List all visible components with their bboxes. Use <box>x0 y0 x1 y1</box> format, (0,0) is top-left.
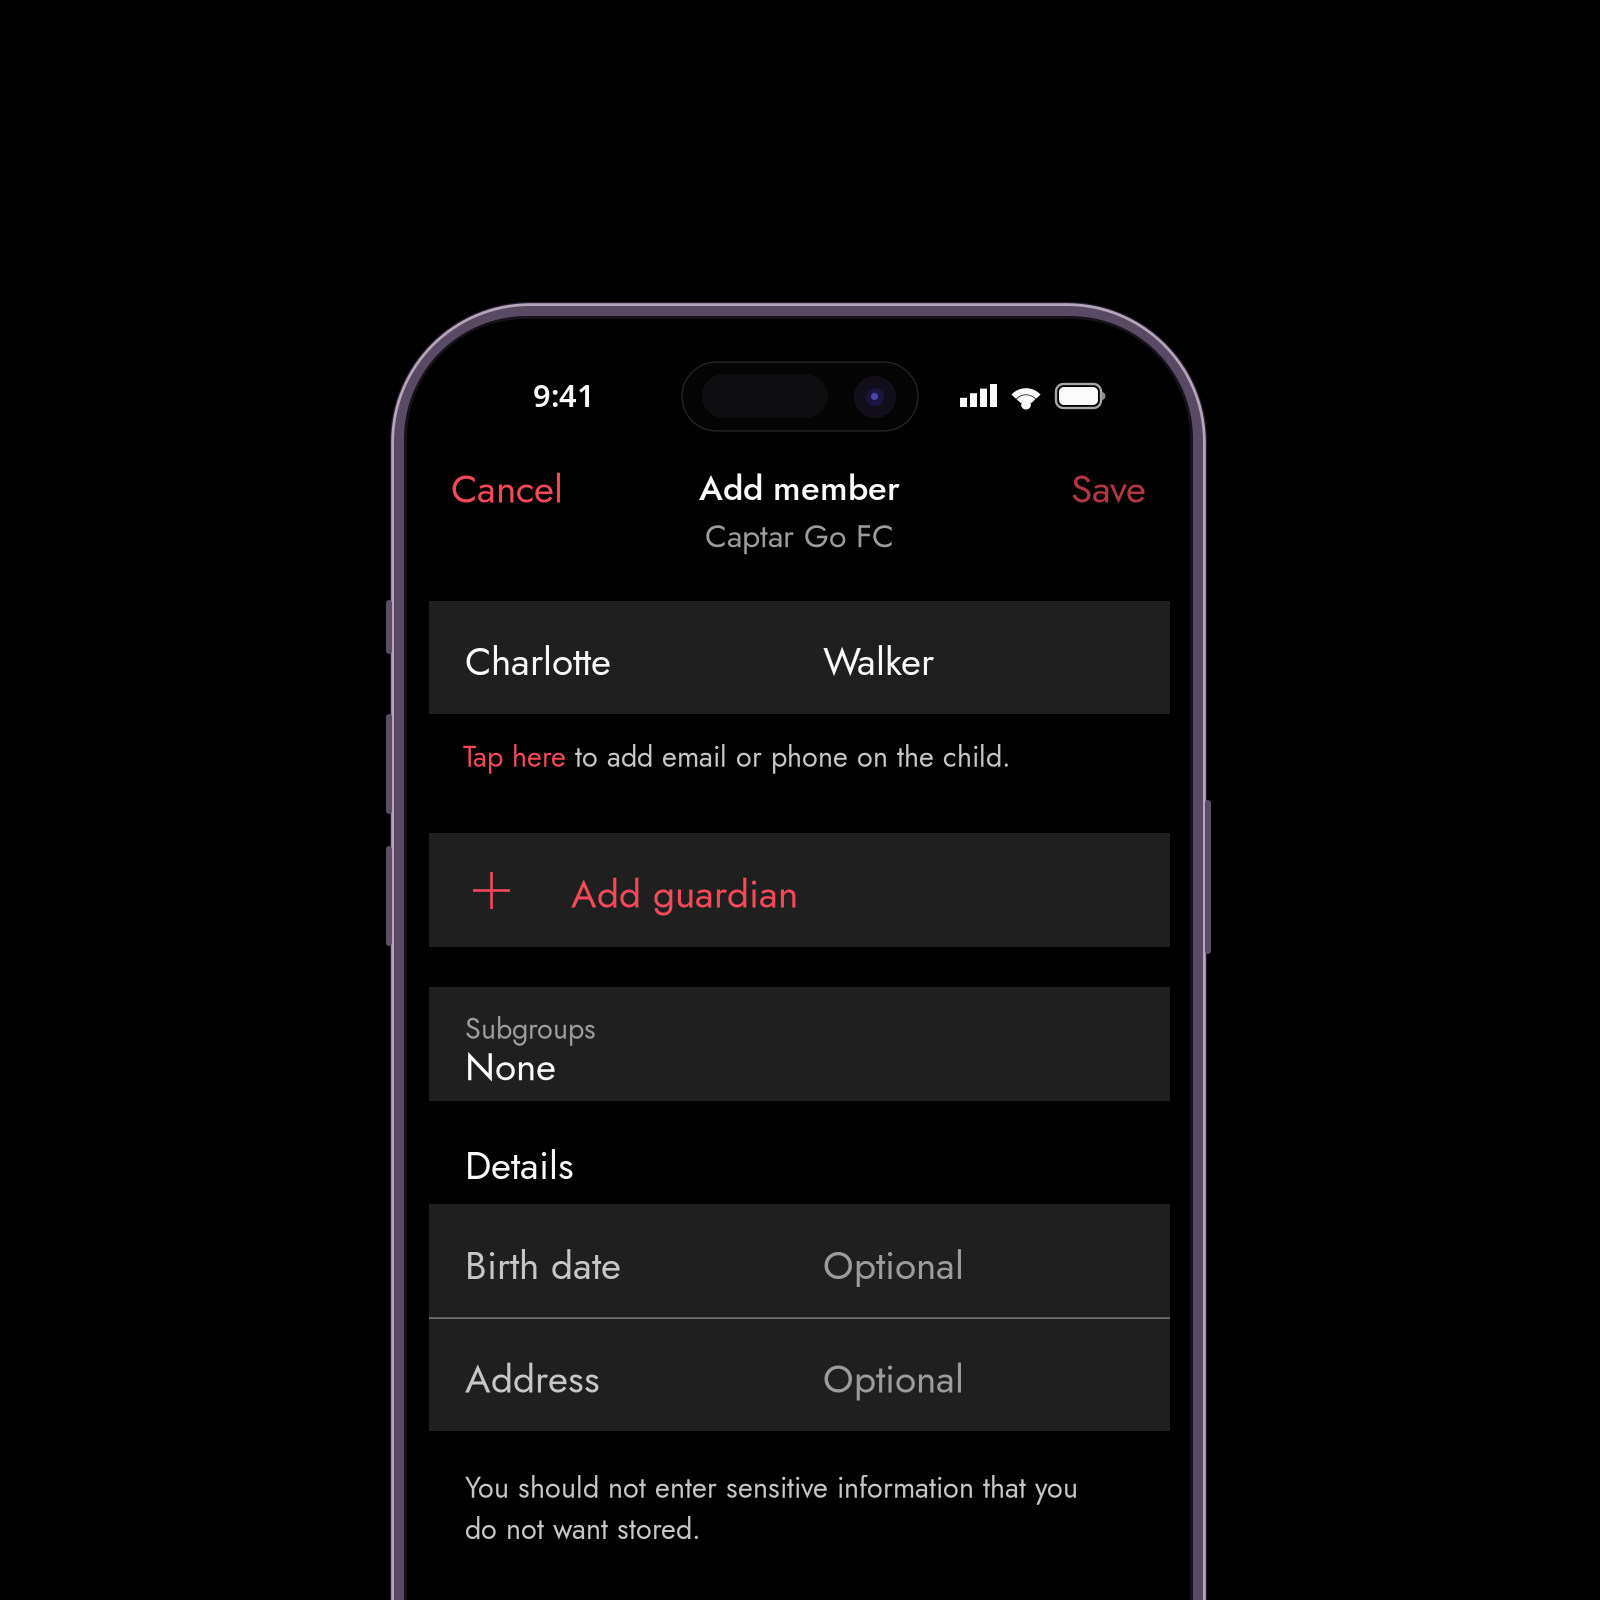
button[interactable]: Birth date <box>429 1204 1170 1319</box>
staticText: to add email or phone on the child. <box>566 736 1011 777</box>
staticText: Tap here <box>463 736 566 777</box>
staticText: Address <box>465 1351 600 1407</box>
button[interactable]: Subgroups <box>429 987 1170 1101</box>
button[interactable]: Address <box>429 1319 1170 1431</box>
staticText: Charlotte <box>465 634 611 689</box>
staticText: Add member <box>699 463 900 513</box>
button[interactable]: Cancel <box>429 454 629 540</box>
staticText: Save <box>1071 461 1146 517</box>
staticText: Birth date <box>465 1238 621 1293</box>
staticText: Subgroups <box>465 1008 596 1049</box>
staticText: Optional <box>823 1238 964 1293</box>
staticText: Details <box>465 1138 574 1193</box>
button[interactable]: Add guardian <box>429 833 1170 947</box>
staticText: Optional <box>823 1351 964 1407</box>
staticText: You should not enter sensitive informati… <box>465 1467 1078 1550</box>
staticText: Walker <box>823 634 934 689</box>
staticText: Cancel <box>451 461 563 517</box>
staticText: None <box>465 1039 556 1095</box>
button[interactable]: Save <box>429 454 629 540</box>
staticText: Captar Go FC <box>705 513 894 559</box>
staticText: 9:41 <box>533 375 595 415</box>
staticText: Add guardian <box>571 866 798 922</box>
